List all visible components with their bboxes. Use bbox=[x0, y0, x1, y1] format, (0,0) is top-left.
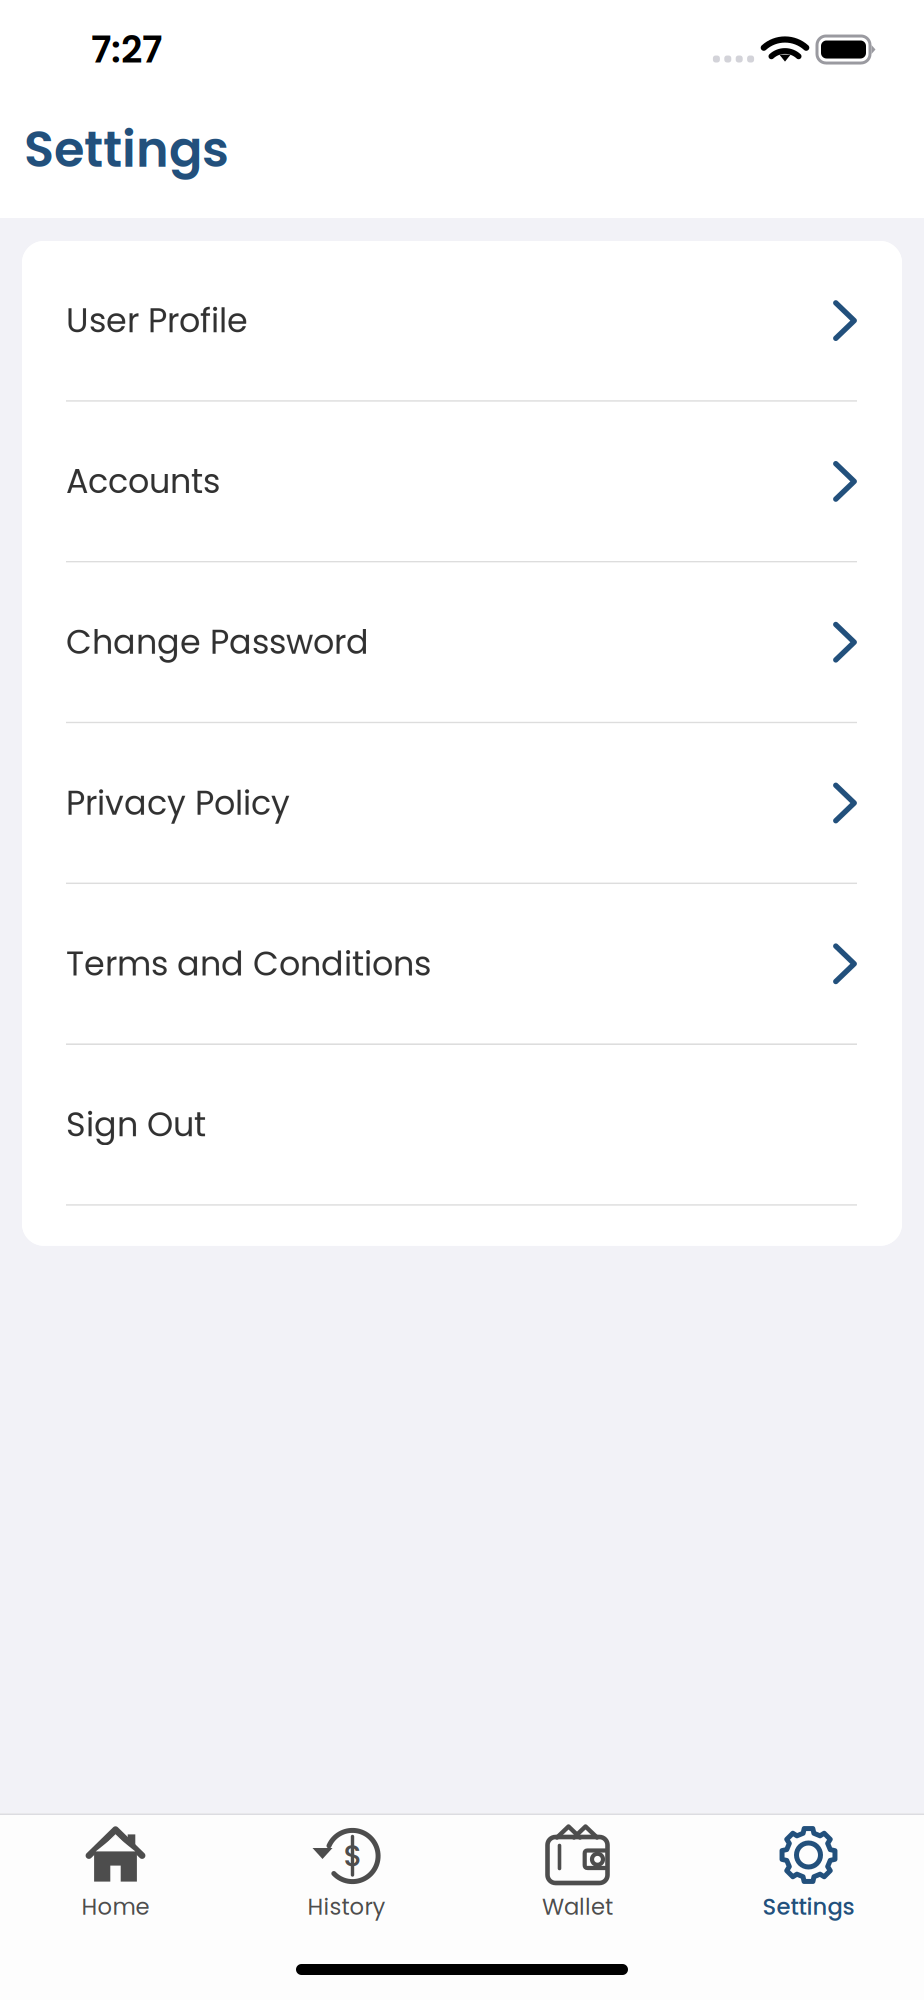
button[interactable]: S bbox=[231, 1815, 462, 1939]
button[interactable]: User Profile bbox=[22, 241, 902, 402]
button[interactable]: Home bbox=[0, 1815, 231, 1939]
button[interactable]: Change Password bbox=[22, 563, 902, 723]
button[interactable]: Accounts bbox=[22, 402, 902, 563]
staticText: Change Password bbox=[66, 619, 369, 666]
staticText: Privacy Policy bbox=[66, 780, 290, 826]
staticText: Home bbox=[81, 1891, 149, 1923]
staticText: User Profile bbox=[66, 297, 248, 344]
staticText: Accounts bbox=[66, 458, 220, 505]
staticText: Sign Out bbox=[66, 1101, 206, 1148]
staticText: Wallet bbox=[542, 1891, 613, 1923]
button[interactable]: Terms and Conditions bbox=[22, 884, 902, 1045]
staticText: Settings bbox=[24, 115, 229, 184]
staticText: S bbox=[343, 1835, 361, 1877]
staticText: Terms and Conditions bbox=[66, 940, 431, 987]
staticText: 7:27 bbox=[91, 23, 162, 76]
button[interactable]: Settings bbox=[693, 1815, 924, 1939]
button[interactable]: Wallet bbox=[462, 1815, 693, 1939]
staticText: Settings bbox=[762, 1891, 854, 1923]
button[interactable]: Privacy Policy bbox=[22, 723, 902, 884]
button[interactable]: Sign Out bbox=[22, 1045, 902, 1206]
staticText: History bbox=[307, 1891, 385, 1923]
